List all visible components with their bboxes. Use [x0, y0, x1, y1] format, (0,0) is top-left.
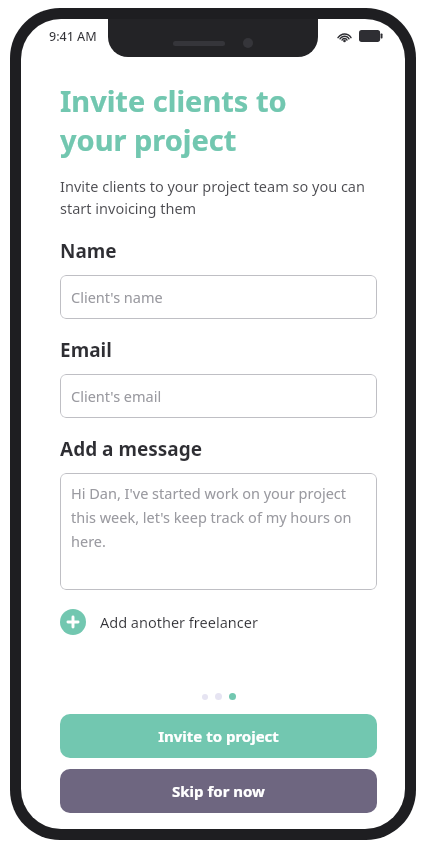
- staticText: Add a message: [60, 436, 203, 462]
- button[interactable]: Hi Dan, I've started work on your projec…: [60, 473, 377, 590]
- staticText: Client's email: [71, 386, 162, 406]
- staticText: Invite to project: [158, 726, 279, 746]
- button[interactable]: Add another freelancer: [60, 605, 258, 639]
- other: Battery full: [359, 30, 383, 42]
- staticText: Add another freelancer: [100, 612, 258, 632]
- other: Wi-Fi signal: [337, 31, 352, 42]
- button[interactable]: Client's name: [60, 275, 377, 319]
- button[interactable]: Skip for now: [60, 769, 377, 813]
- button[interactable]: Invite to project: [60, 714, 377, 758]
- staticText: Invite clients to your project team so y…: [60, 176, 377, 218]
- button[interactable]: Client's email: [60, 374, 377, 418]
- staticText: Email: [60, 337, 112, 363]
- staticText: 9:41 AM: [49, 28, 97, 45]
- staticText: Skip for now: [172, 781, 265, 801]
- staticText: Client's name: [71, 287, 163, 307]
- staticText: Hi Dan, I've started work on your projec…: [71, 483, 366, 551]
- staticText: Name: [60, 238, 117, 264]
- staticText: Invite clients to your project: [60, 81, 287, 159]
